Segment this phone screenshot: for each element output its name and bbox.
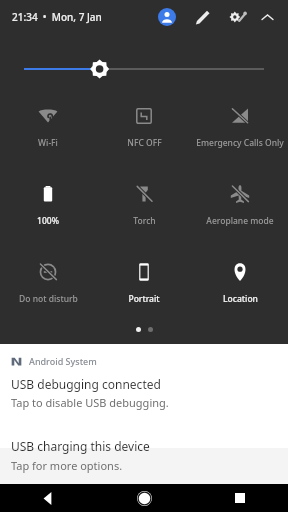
staticText: Portrait bbox=[128, 293, 160, 305]
staticText: NFC OFF bbox=[127, 137, 162, 149]
staticText: Emergency Calls Only bbox=[196, 137, 284, 149]
button[interactable]: User bbox=[158, 8, 176, 26]
staticText: Tap to disable USB debugging. bbox=[11, 395, 169, 410]
staticText: Torch bbox=[133, 215, 156, 227]
button[interactable]: Home bbox=[96, 484, 192, 512]
button[interactable]: Emergency Calls Only bbox=[192, 102, 288, 158]
button[interactable]: Aeroplane mode bbox=[192, 180, 288, 236]
staticText: Aeroplane mode bbox=[206, 215, 274, 227]
staticText: USB debugging connected bbox=[11, 376, 161, 392]
button[interactable]: Collapse bbox=[258, 8, 276, 26]
button[interactable]: USB charging this device bbox=[0, 448, 288, 484]
button[interactable]: Torch bbox=[96, 180, 192, 236]
button[interactable]: Recent apps bbox=[192, 484, 288, 512]
button[interactable]: Back bbox=[0, 484, 96, 512]
button[interactable]: 100% bbox=[0, 180, 96, 236]
button[interactable]: NFC OFF bbox=[96, 102, 192, 158]
staticText: 100% bbox=[37, 215, 59, 227]
button[interactable]: Do not disturb bbox=[0, 258, 96, 314]
staticText: Tap for more options. bbox=[11, 458, 123, 473]
button[interactable]: Brightness bbox=[24, 58, 264, 80]
staticText: Android System bbox=[29, 355, 97, 367]
staticText: Location bbox=[223, 293, 258, 305]
button[interactable]: Android System bbox=[0, 344, 288, 448]
button[interactable]: Edit bbox=[192, 7, 212, 27]
button[interactable]: Settings bbox=[226, 6, 248, 28]
button[interactable]: Location bbox=[192, 258, 288, 314]
button[interactable]: Wi-Fi bbox=[0, 102, 96, 158]
staticText: Wi-Fi bbox=[38, 137, 58, 149]
staticText: Do not disturb bbox=[19, 293, 78, 305]
staticText: 21:34 • Mon, 7 Jan bbox=[12, 10, 102, 24]
staticText: USB charging this device bbox=[11, 438, 150, 454]
button[interactable]: Portrait bbox=[96, 258, 192, 314]
